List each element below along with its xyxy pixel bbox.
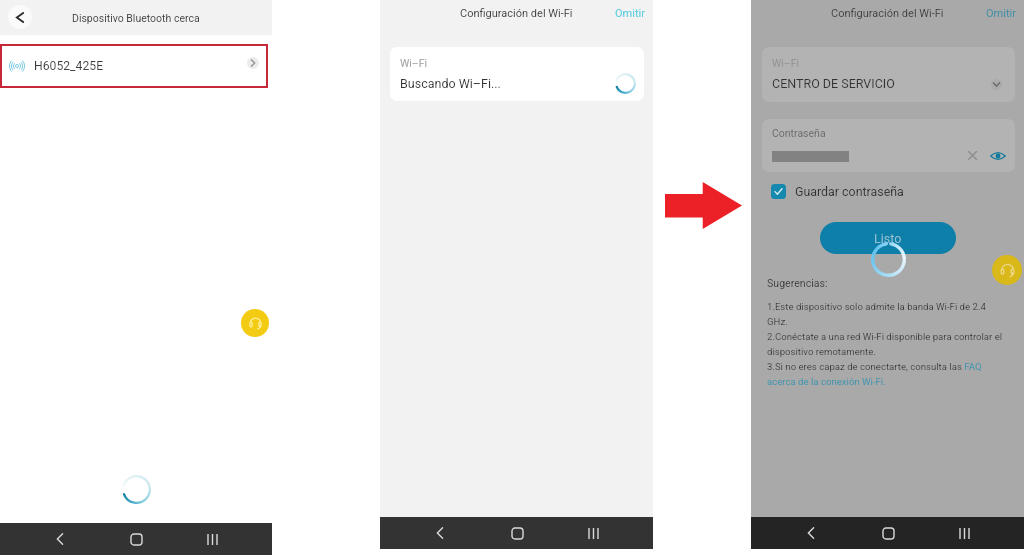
staticText: Contraseña bbox=[772, 127, 826, 139]
button[interactable]: Contraseña bbox=[762, 119, 1015, 172]
button[interactable]: Customer support bbox=[992, 255, 1022, 285]
button[interactable]: Recent apps bbox=[196, 523, 228, 555]
button[interactable]: Omitir bbox=[613, 5, 647, 22]
staticText: CENTRO DE SERVICIO bbox=[772, 76, 895, 91]
button[interactable]: Customer support bbox=[241, 309, 269, 337]
staticText: 1.Este dispositivo solo admite la banda … bbox=[767, 301, 1007, 387]
staticText: Sugerencias: bbox=[767, 277, 828, 289]
button[interactable]: Choose network bbox=[991, 79, 1002, 90]
button[interactable]: Wi–Fi bbox=[762, 47, 1015, 102]
button[interactable]: Wi–Fi bbox=[390, 47, 644, 101]
button[interactable]: Home bbox=[872, 517, 904, 549]
button[interactable]: Omitir bbox=[984, 5, 1018, 22]
staticText: Wi–Fi bbox=[400, 57, 428, 69]
staticText: Wi–Fi bbox=[772, 57, 800, 69]
button[interactable]: Clear password bbox=[965, 148, 980, 163]
button[interactable]: Back bbox=[795, 517, 827, 549]
button[interactable]: Home bbox=[120, 523, 152, 555]
staticText: H6052_425E bbox=[34, 59, 104, 73]
staticText: Dispositivo Bluetooth cerca bbox=[72, 12, 200, 24]
staticText: Configuración del Wi-Fi bbox=[831, 7, 944, 20]
button[interactable]: Recent apps bbox=[577, 517, 609, 549]
button[interactable]: Guardar contraseña bbox=[771, 184, 904, 199]
button[interactable]: Back bbox=[424, 517, 456, 549]
button[interactable]: Recent apps bbox=[948, 517, 980, 549]
button[interactable]: Listo bbox=[820, 222, 956, 254]
staticText: Guardar contraseña bbox=[795, 184, 904, 199]
staticText: Configuración del Wi-Fi bbox=[460, 7, 573, 20]
staticText: Omitir bbox=[615, 7, 645, 20]
staticText: Buscando Wi–Fi... bbox=[400, 76, 501, 91]
button[interactable]: Show password bbox=[990, 148, 1006, 164]
staticText: Listo bbox=[874, 231, 902, 246]
button[interactable]: Back bbox=[8, 5, 32, 29]
button[interactable]: H6052_425E bbox=[2, 46, 266, 86]
button[interactable]: Back bbox=[44, 523, 76, 555]
button[interactable]: Home bbox=[501, 517, 533, 549]
staticText: Omitir bbox=[986, 7, 1016, 20]
